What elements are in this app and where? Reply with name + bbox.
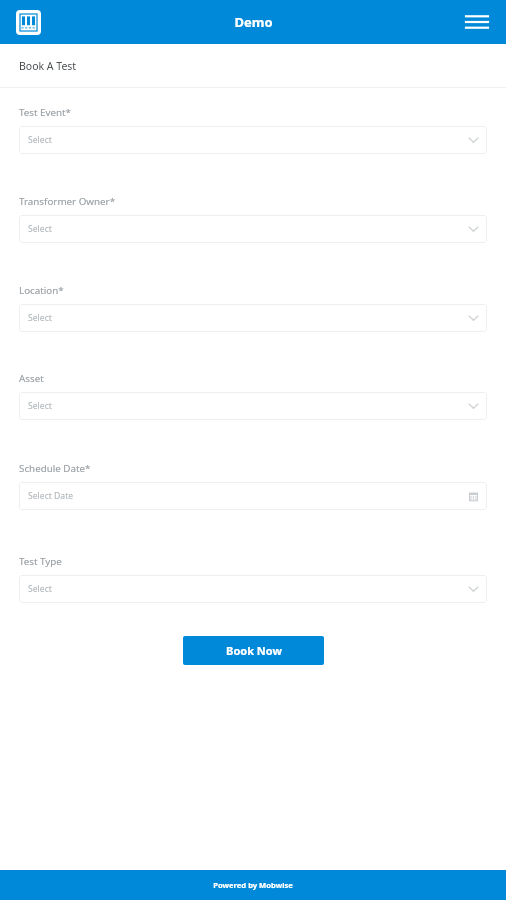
staticText: Select: [28, 223, 469, 235]
button[interactable]: Home: [16, 10, 41, 35]
staticText: Select: [28, 134, 469, 146]
button[interactable]: Select: [19, 304, 487, 332]
staticText: Select Date: [28, 490, 469, 502]
staticText: Book A Test: [19, 59, 77, 73]
button[interactable]: Menu: [460, 5, 494, 39]
button[interactable]: Select Date: [19, 482, 487, 510]
staticText: Schedule Date*: [19, 462, 91, 475]
staticText: Powered by Mobwise: [213, 880, 293, 890]
staticText: Book Now: [226, 643, 282, 658]
button[interactable]: Select: [19, 126, 487, 154]
staticText: Demo: [234, 13, 273, 31]
staticText: Asset: [19, 372, 44, 385]
button[interactable]: Book Now: [183, 636, 324, 665]
staticText: Select: [28, 312, 469, 324]
staticText: Transformer Owner*: [19, 195, 116, 208]
button[interactable]: Select: [19, 392, 487, 420]
button[interactable]: Select: [19, 215, 487, 243]
staticText: Test Type: [19, 555, 62, 568]
staticText: Select: [28, 400, 469, 412]
button[interactable]: Select: [19, 575, 487, 603]
staticText: Test Event*: [19, 106, 72, 119]
staticText: Select: [28, 583, 469, 595]
staticText: Location*: [19, 284, 64, 297]
